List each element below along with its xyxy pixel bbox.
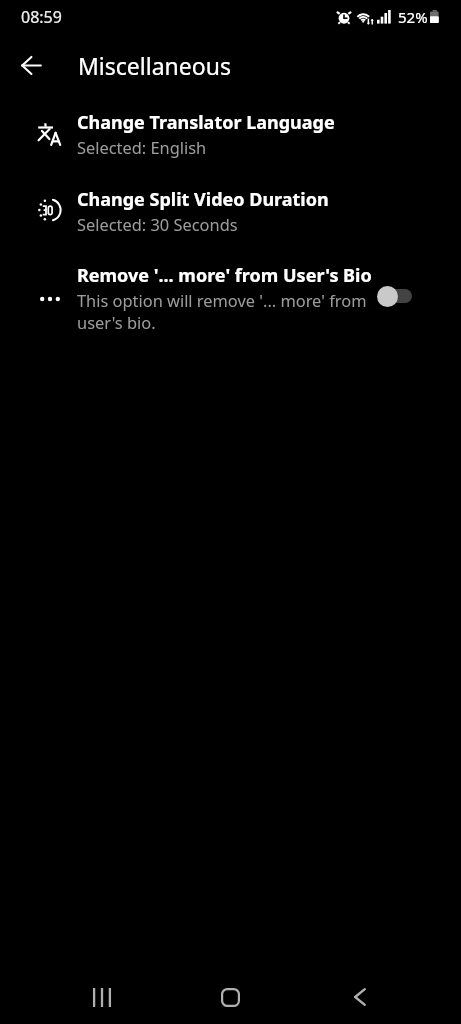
- button[interactable]: Remove more from user's bio toggle: [377, 281, 413, 311]
- staticText: Change Translator Language: [77, 110, 335, 135]
- button[interactable]: Home: [202, 970, 259, 1024]
- staticText: Miscellaneous: [78, 50, 231, 81]
- staticText: Remove '... more' from User's Bio: [77, 263, 372, 288]
- staticText: This option will remove '... more' from …: [77, 289, 373, 334]
- staticText: Change Split Video Duration: [77, 187, 329, 212]
- staticText: Selected: English: [77, 136, 207, 158]
- button[interactable]: Change Split Video Duration: [0, 179, 461, 243]
- button[interactable]: Back: [8, 42, 55, 89]
- staticText: 08:59: [21, 6, 62, 28]
- button[interactable]: Back: [331, 970, 388, 1024]
- staticText: 52%: [398, 7, 428, 27]
- button[interactable]: Remove '... more' from User's Bio: [0, 255, 461, 342]
- button[interactable]: Change Translator Language: [0, 102, 461, 166]
- staticText: Selected: 30 Seconds: [77, 213, 238, 235]
- button[interactable]: Recent apps: [73, 970, 130, 1024]
